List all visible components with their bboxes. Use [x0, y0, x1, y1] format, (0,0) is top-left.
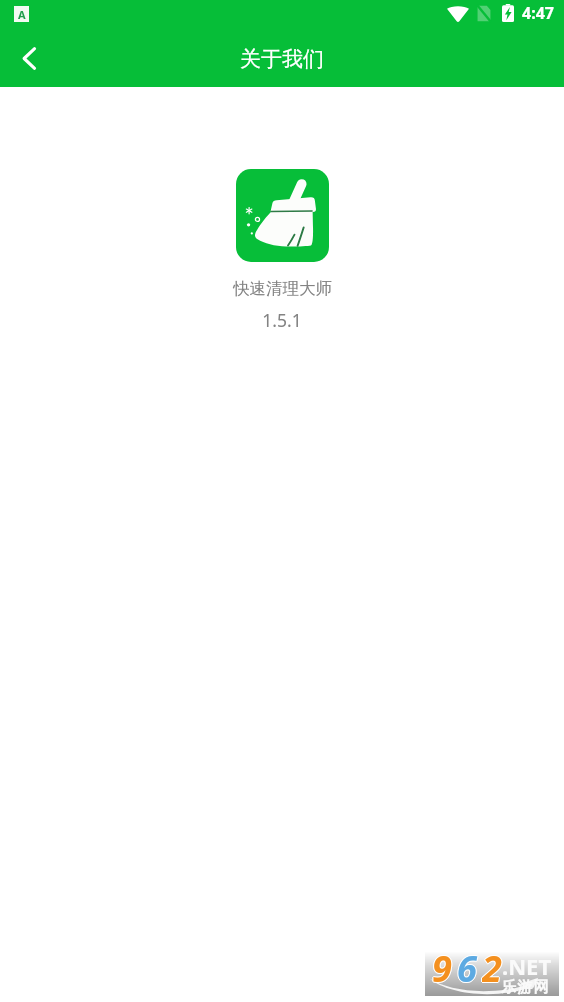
- staticText: 6: [457, 944, 482, 988]
- staticText: 4:47: [522, 2, 554, 24]
- staticText: A: [18, 7, 26, 22]
- staticText: 9: [432, 945, 457, 989]
- staticText: 9: [432, 943, 457, 987]
- staticText: 9: [431, 944, 456, 988]
- button[interactable]: Back: [0, 31, 59, 87]
- staticText: 6: [458, 944, 483, 988]
- staticText: 9: [433, 944, 458, 988]
- staticText: .NET: [502, 951, 552, 981]
- staticText: 9: [432, 944, 457, 988]
- staticText: 2: [482, 945, 507, 989]
- staticText: 2: [481, 944, 506, 988]
- staticText: 乐游网: [501, 978, 551, 997]
- staticText: 2: [482, 943, 507, 987]
- staticText: 2: [483, 944, 508, 988]
- staticText: 6: [457, 945, 482, 989]
- staticText: 1.5.1: [262, 308, 302, 332]
- staticText: 6: [456, 944, 481, 988]
- staticText: 关于我们: [240, 46, 324, 72]
- staticText: 快速清理大师: [233, 278, 332, 299]
- staticText: 2: [482, 944, 507, 988]
- staticText: 6: [457, 943, 482, 987]
